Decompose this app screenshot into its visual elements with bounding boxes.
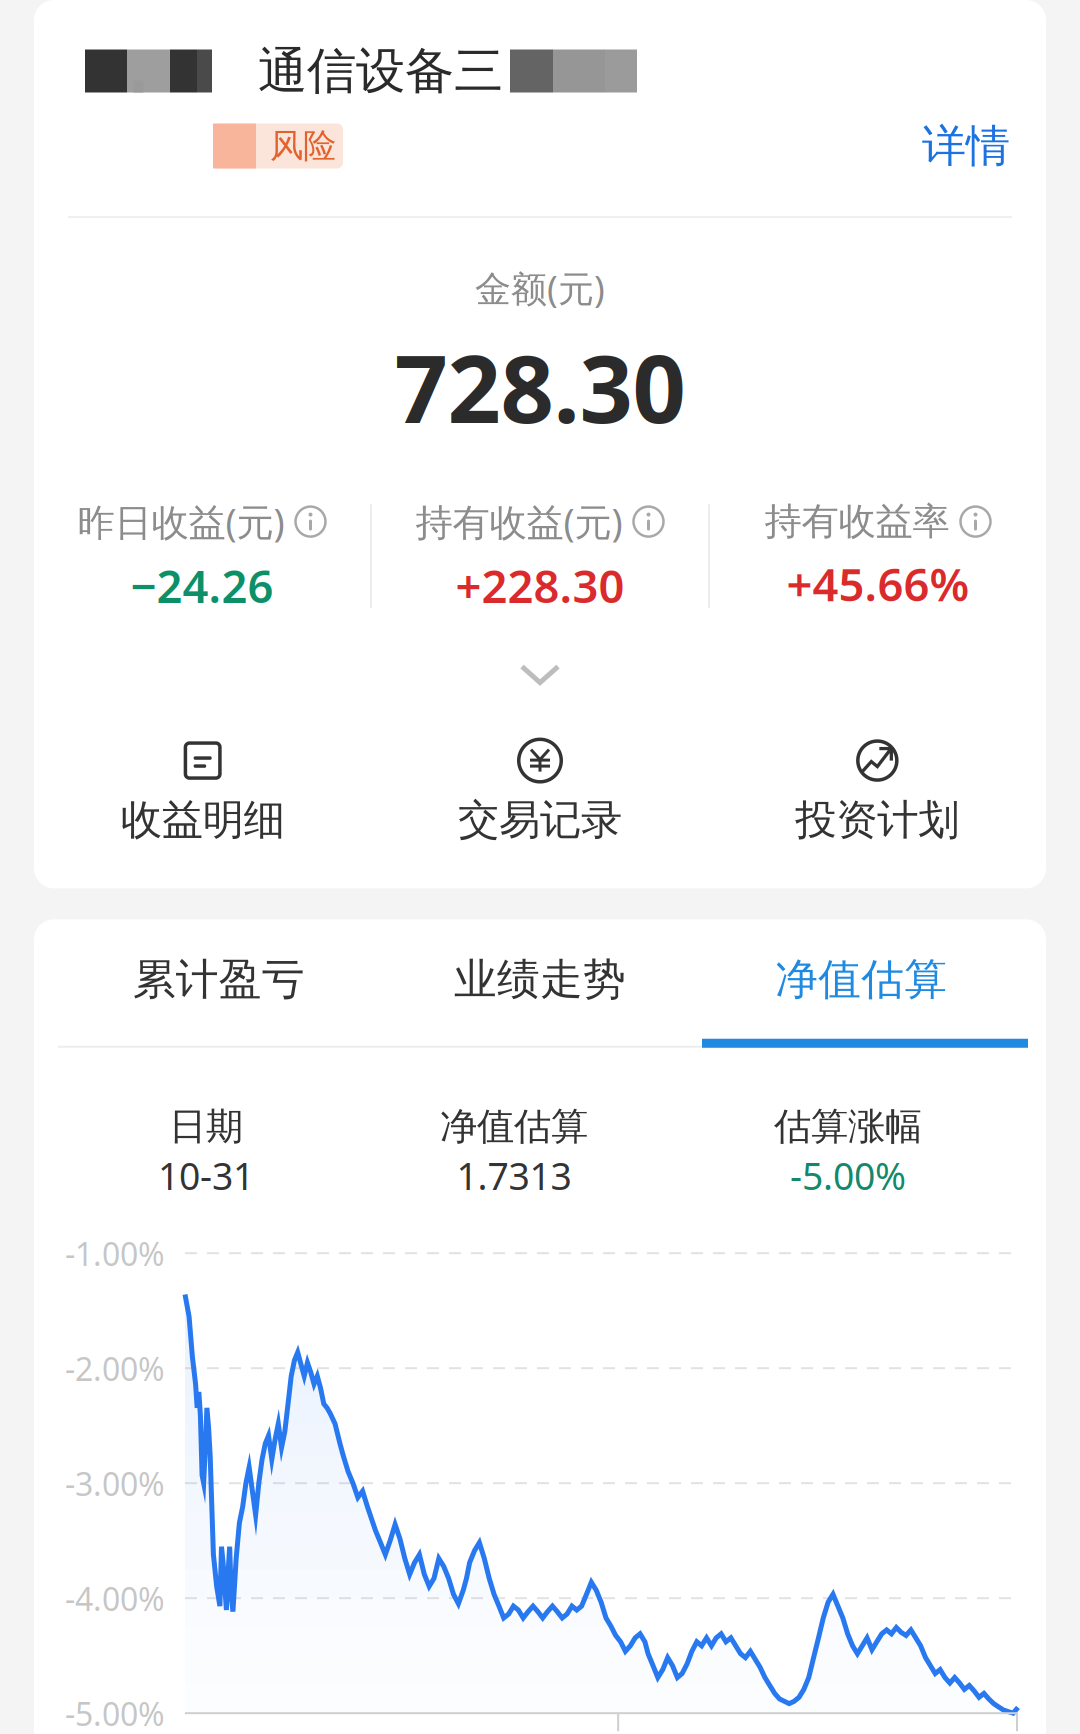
staticText: 金额(元) [475,264,605,312]
staticText: -4.00% [65,1577,165,1620]
button[interactable]: 累计盈亏 [58,939,379,1020]
staticText: 10-31 [158,1151,254,1200]
button[interactable]: 投资计划 [709,741,1046,845]
staticText: 业绩走势 [454,953,626,1006]
staticText: 净值估算 [775,953,947,1006]
staticText: -5.00% [65,1692,165,1734]
button[interactable]: 业绩走势 [379,939,701,1020]
staticText: +228.30 [455,555,624,616]
staticText: 累计盈亏 [133,953,305,1006]
staticText: 日期 [169,1104,243,1150]
staticText: -3.00% [65,1462,165,1505]
staticText: 通信设备三 [258,41,503,101]
staticText: 风险 [270,126,336,166]
button[interactable]: 净值估算 [701,939,1022,1020]
staticText: 交易记录 [458,795,622,845]
staticText: 1.7313 [456,1151,571,1200]
staticText: 估算涨幅 [774,1104,922,1150]
button[interactable]: 交易记录 [371,741,709,845]
staticText: 持有收益(元) [415,497,622,546]
staticText: 728.30 [394,325,685,449]
staticText: 净值估算 [440,1104,588,1150]
staticText: 投资计划 [795,795,959,845]
button[interactable]: Expand [519,654,561,696]
button[interactable]: 收益明细 [34,741,371,845]
button[interactable]: 详情 [918,111,1014,181]
staticText: 详情 [922,119,1010,173]
staticText: −24.26 [130,555,273,616]
staticText: 昨日收益(元) [77,497,284,546]
staticText: -5.00% [790,1151,906,1200]
staticText: 持有收益率 [764,499,949,545]
staticText: +45.66% [786,553,969,614]
staticText: -2.00% [65,1347,165,1390]
staticText: -1.00% [65,1232,165,1275]
staticText: 收益明细 [121,795,285,845]
